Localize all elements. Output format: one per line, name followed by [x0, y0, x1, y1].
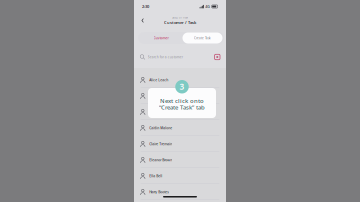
button[interactable]: Customer — [139, 32, 182, 44]
staticText: 4G — [205, 4, 210, 9]
button[interactable]: Create Task — [182, 32, 222, 43]
button[interactable]: Eleanor Brown — [134, 152, 226, 168]
button[interactable]: Alice Leach — [134, 72, 226, 88]
staticText: Customer / Task — [164, 20, 196, 25]
staticText: Eleanor Brown — [149, 158, 172, 162]
button[interactable]: Caitlin Barrow — [134, 104, 226, 120]
button[interactable]: Back — [138, 15, 147, 26]
staticText: “Create Task” tab — [159, 103, 205, 111]
staticText: Search for a customer — [148, 55, 183, 59]
staticText: Customer — [153, 36, 168, 40]
staticText: 2:30 — [142, 4, 149, 9]
staticText: Caitlin Malone — [149, 126, 172, 130]
staticText: Claire Tremain — [149, 142, 172, 146]
staticText: Next click onto — [160, 97, 204, 105]
button[interactable]: Ella Bell — [134, 168, 226, 184]
button[interactable]: Harry Bootes — [134, 184, 226, 200]
staticText: Alice Leach — [149, 78, 168, 82]
button[interactable]: Scan card — [215, 54, 220, 60]
button[interactable]: Claire Tremain — [134, 136, 226, 152]
staticText: Create Task — [194, 36, 211, 40]
button[interactable]: Caitlin Malone — [134, 120, 226, 136]
staticText: Harry Bootes — [149, 190, 169, 194]
staticText: Ella Bell — [149, 174, 162, 178]
button[interactable]: Beth Cartwright — [134, 88, 226, 104]
staticText: Select or new — [172, 16, 188, 19]
staticText: 3 — [179, 81, 184, 92]
